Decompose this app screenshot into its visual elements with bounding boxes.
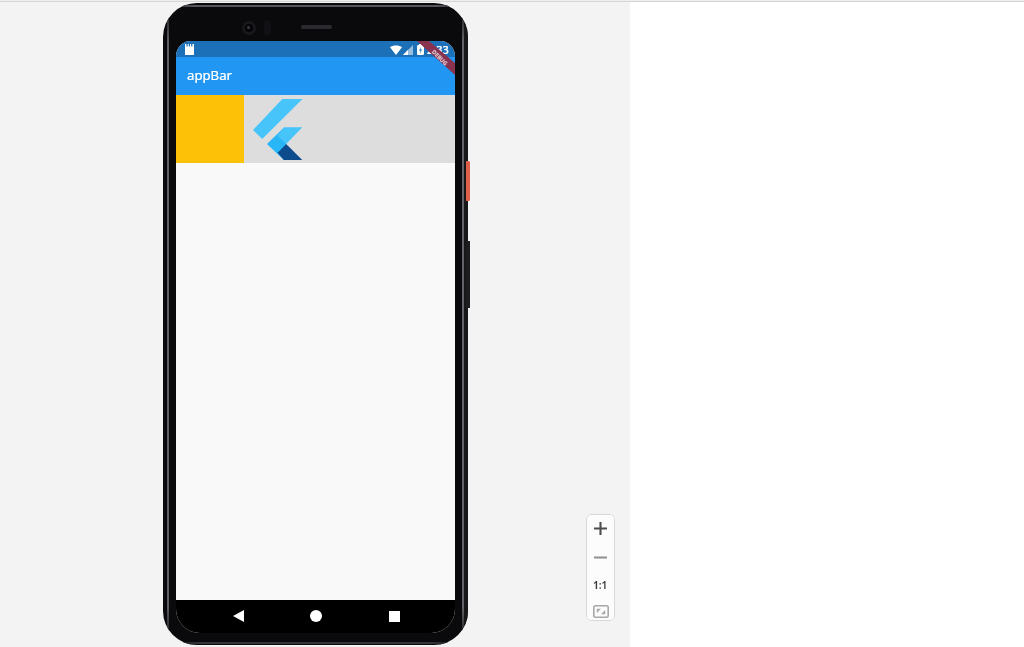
button[interactable]: Zoom out	[586, 544, 615, 571]
button[interactable]: appBar	[176, 57, 455, 95]
button[interactable]: Home	[303, 603, 329, 629]
staticText: 2:33	[427, 42, 449, 57]
button[interactable]: Recent apps	[381, 603, 407, 629]
button[interactable]: Zoom in	[586, 515, 615, 542]
staticText: DEBUG	[430, 48, 450, 68]
button[interactable]: Fit to screen	[586, 599, 615, 621]
button[interactable]: Back	[225, 603, 251, 629]
staticText: appBar	[187, 66, 233, 84]
button[interactable]: 1:1	[586, 572, 615, 597]
staticText: 1:1	[593, 578, 608, 592]
